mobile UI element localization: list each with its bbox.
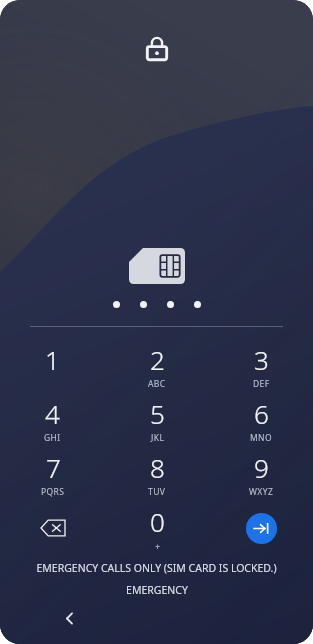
staticText: WXYZ xyxy=(249,486,274,498)
staticText: ABC xyxy=(148,378,166,390)
staticText: EMERGENCY xyxy=(126,583,188,597)
staticText: 2 xyxy=(150,342,165,377)
staticText: 4 xyxy=(45,396,60,431)
button[interactable]: 8 xyxy=(105,447,209,501)
button[interactable]: Enter PIN xyxy=(246,513,277,544)
staticText: 6 xyxy=(254,396,269,431)
staticText: 8 xyxy=(150,450,165,485)
staticText: 1 xyxy=(45,342,60,377)
staticText: 3 xyxy=(254,342,269,377)
other: Locked xyxy=(146,37,168,61)
staticText: 0 xyxy=(150,504,165,539)
button[interactable]: EMERGENCY xyxy=(116,581,198,599)
button[interactable]: 0 xyxy=(105,501,209,555)
staticText: EMERGENCY CALLS ONLY (SIM CARD IS LOCKED… xyxy=(36,561,277,575)
button[interactable]: 5 xyxy=(105,393,209,447)
button[interactable]: 9 xyxy=(209,447,313,501)
button[interactable]: 2 xyxy=(105,339,209,393)
button[interactable]: 6 xyxy=(209,393,313,447)
staticText: 5 xyxy=(150,396,165,431)
staticText: TUV xyxy=(148,486,166,498)
button[interactable]: 1 xyxy=(0,339,105,393)
button[interactable]: Backspace xyxy=(0,501,105,555)
staticText: PQRS xyxy=(41,486,65,498)
staticText: + xyxy=(155,540,161,552)
staticText: GHI xyxy=(44,432,61,444)
staticText: JKL xyxy=(151,432,165,444)
staticText: DEF xyxy=(253,378,270,390)
staticText: MNO xyxy=(250,432,273,444)
button[interactable]: Back xyxy=(56,605,82,631)
staticText: 7 xyxy=(46,450,61,485)
button[interactable]: 7 xyxy=(0,447,105,501)
button[interactable]: 3 xyxy=(209,339,313,393)
button[interactable]: 4 xyxy=(0,393,105,447)
staticText: 9 xyxy=(254,450,269,485)
